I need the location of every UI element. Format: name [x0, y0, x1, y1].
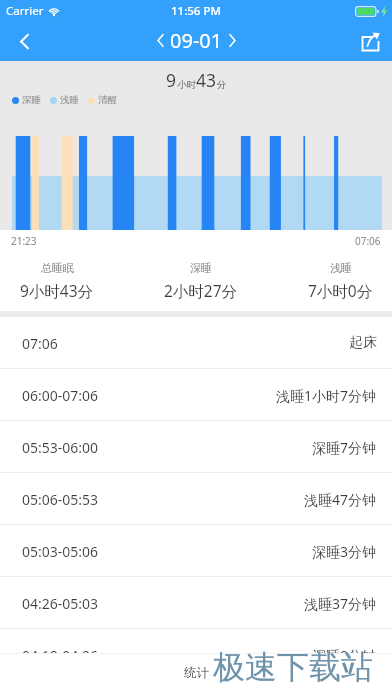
staticText: 浅睡37分钟 — [304, 594, 377, 613]
staticText: 浅睡1小时7分钟 — [276, 386, 377, 405]
staticText: 浅睡47分钟 — [304, 490, 377, 509]
staticText: 06:00-07:06 — [22, 386, 99, 405]
staticText: 7小时0分 — [308, 280, 373, 301]
button[interactable]: 05:06-05:53 — [0, 473, 392, 525]
staticText: 05:03-05:06 — [22, 542, 99, 561]
button[interactable]: 05:03-05:06 — [0, 525, 392, 577]
button[interactable]: Back — [0, 22, 48, 61]
staticText: Carrier — [6, 3, 44, 19]
staticText: 统计 — [184, 665, 209, 681]
staticText: 深睡8分钟 — [312, 646, 377, 665]
staticText: 浅睡23分钟 — [304, 681, 377, 696]
staticText: 极速下载站 — [213, 647, 373, 687]
staticText: 09-01 — [170, 27, 223, 54]
staticText: 21:23 — [11, 234, 37, 248]
staticText: 04:18-04:26 — [22, 646, 99, 665]
staticText: 深睡 — [190, 261, 212, 275]
button[interactable]: 06:00-07:06 — [0, 369, 392, 421]
staticText: 07:06 — [355, 234, 381, 248]
staticText: 深睡 — [22, 94, 41, 106]
button[interactable]: Share — [348, 22, 392, 61]
staticText: 05:53-06:00 — [22, 438, 99, 457]
button[interactable]: 03:55-04:18 — [0, 681, 392, 696]
staticText: 浅睡 — [60, 94, 79, 106]
staticText: 分 — [217, 79, 227, 91]
staticText: 清醒 — [98, 94, 117, 106]
button[interactable]: 统计 — [184, 665, 209, 681]
button[interactable]: 04:26-05:03 — [0, 577, 392, 629]
staticText: 9 — [166, 68, 177, 92]
staticText: 深睡3分钟 — [312, 542, 377, 561]
staticText: 9小时43分 — [20, 280, 94, 301]
button[interactable]: 04:18-04:26 — [0, 629, 392, 681]
button[interactable]: 07:06 — [0, 317, 392, 369]
staticText: 07:06 — [22, 334, 58, 353]
staticText: 总睡眠 — [41, 261, 74, 275]
staticText: 起床 — [349, 334, 377, 352]
staticText: 11:56 PM — [171, 3, 222, 19]
staticText: 43 — [196, 68, 217, 92]
staticText: 05:06-05:53 — [22, 490, 99, 509]
staticText: 浅睡 — [330, 261, 352, 275]
staticText: 深睡7分钟 — [312, 438, 377, 457]
button[interactable]: 05:53-06:00 — [0, 421, 392, 473]
staticText: 04:26-05:03 — [22, 594, 99, 613]
staticText: 2小时27分 — [164, 280, 238, 301]
staticText: 小时 — [177, 79, 196, 91]
